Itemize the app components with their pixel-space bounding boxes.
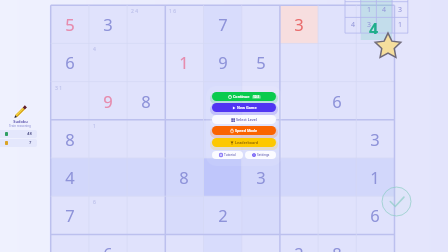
- staticText: 3: [294, 13, 304, 35]
- button[interactable]: 3: [89, 5, 127, 43]
- staticText: 3: [367, 20, 372, 30]
- button[interactable]: Leaderboard: [212, 138, 276, 147]
- button[interactable]: 5: [51, 5, 89, 43]
- button[interactable]: 9: [89, 82, 127, 120]
- staticText: Continue: [233, 94, 250, 99]
- staticText: 1 6: [169, 8, 177, 15]
- button[interactable]: 8: [51, 120, 89, 158]
- staticText: 2: [218, 204, 228, 226]
- staticText: 3: [370, 128, 380, 150]
- button[interactable]: 4: [51, 158, 89, 196]
- staticText: 1: [93, 123, 96, 130]
- staticText: 6: [65, 51, 75, 73]
- staticText: 2: [294, 242, 304, 252]
- button[interactable]: Settings: [245, 151, 276, 159]
- button[interactable]: New Game: [212, 103, 276, 112]
- button[interactable]: 7: [204, 5, 242, 43]
- button[interactable]: 3: [356, 120, 394, 158]
- staticText: 1: [398, 20, 403, 30]
- staticText: 3: [103, 13, 113, 35]
- staticText: Sudoku: [13, 119, 28, 124]
- staticText: Tutorial: [224, 153, 236, 157]
- button[interactable]: 5: [242, 43, 280, 81]
- staticText: 6: [103, 242, 113, 252]
- staticText: Train reasoning: [9, 124, 31, 128]
- button[interactable]: Select Level: [212, 115, 276, 124]
- button[interactable]: 8: [127, 82, 165, 120]
- button[interactable]: 3: [242, 158, 280, 196]
- button[interactable]: 6: [51, 43, 89, 81]
- button[interactable]: 8: [318, 234, 356, 252]
- staticText: 1: [370, 166, 380, 188]
- staticText: 7: [218, 13, 228, 35]
- staticText: 2 4: [131, 8, 139, 15]
- staticText: 5: [256, 51, 266, 73]
- staticText: Settings: [257, 153, 270, 157]
- button[interactable]: 7: [51, 196, 89, 234]
- staticText: Speed Mode: [235, 128, 258, 133]
- staticText: 4: [93, 46, 96, 53]
- staticText: 1: [367, 5, 372, 15]
- staticText: 8: [179, 166, 189, 188]
- button[interactable]: 7: [0, 139, 37, 147]
- button[interactable]: 9: [204, 43, 242, 81]
- staticText: 4: [382, 5, 387, 15]
- staticText: 5: [65, 13, 75, 35]
- button[interactable]: 2: [280, 234, 318, 252]
- staticText: New Game: [237, 105, 257, 110]
- button[interactable]: 6: [318, 82, 356, 120]
- button[interactable]: 48: [0, 130, 37, 138]
- staticText: Select Level: [236, 117, 258, 122]
- staticText: 3: [256, 166, 266, 188]
- button[interactable]: Speed Mode: [212, 126, 276, 135]
- button[interactable]: 6: [356, 196, 394, 234]
- button[interactable]: Check solution: [381, 186, 412, 217]
- staticText: 12:3: [253, 95, 260, 99]
- staticText: 1: [179, 51, 189, 73]
- staticText: 3: [398, 5, 403, 15]
- staticText: 6: [370, 204, 380, 226]
- staticText: 8: [141, 90, 151, 112]
- button[interactable]: Tutorial: [212, 151, 243, 159]
- staticText: 3 1: [55, 85, 63, 92]
- staticText: 4: [351, 20, 356, 30]
- staticText: 7: [65, 204, 75, 226]
- staticText: 9: [218, 51, 228, 73]
- button[interactable]: 1: [356, 158, 394, 196]
- staticText: 4: [65, 166, 75, 188]
- button[interactable]: 3: [280, 5, 318, 43]
- button[interactable]: Star reward: [374, 32, 402, 60]
- staticText: Leaderboard: [235, 140, 258, 145]
- button[interactable]: 6: [89, 234, 127, 252]
- staticText: 6: [332, 90, 342, 112]
- staticText: 48: [27, 131, 32, 137]
- button[interactable]: 2: [204, 196, 242, 234]
- staticText: 8: [332, 242, 342, 252]
- staticText: 7: [29, 140, 32, 146]
- button[interactable]: 8: [165, 158, 203, 196]
- staticText: 6: [93, 199, 96, 206]
- button[interactable]: 1: [165, 43, 203, 81]
- staticText: 9: [103, 90, 113, 112]
- button[interactable]: Continue: [212, 92, 276, 101]
- staticText: 8: [65, 128, 75, 150]
- staticText: 4: [369, 18, 379, 34]
